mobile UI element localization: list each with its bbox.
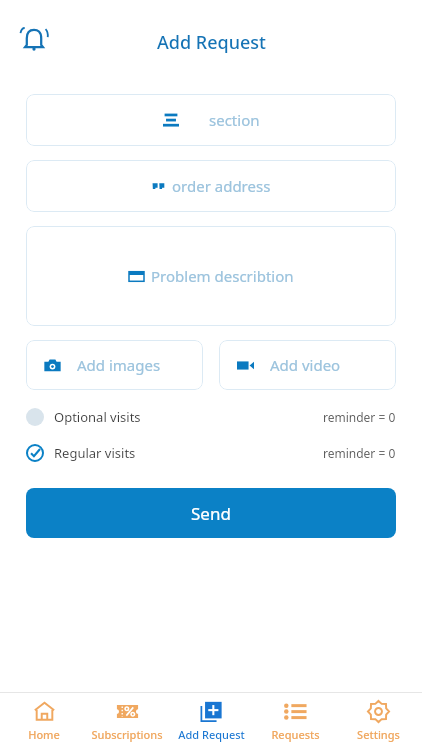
- button[interactable]: order address: [26, 160, 396, 212]
- button[interactable]: Add Request: [171, 692, 251, 750]
- button[interactable]: Add images: [26, 340, 203, 390]
- button[interactable]: section: [26, 94, 396, 146]
- staticText: Add video: [270, 355, 341, 375]
- button[interactable]: Settings: [338, 692, 418, 750]
- staticText: order address: [172, 176, 271, 196]
- button[interactable]: Optional visits: [26, 404, 396, 430]
- button[interactable]: Notifications: [10, 16, 58, 64]
- button[interactable]: Problem describtion: [26, 226, 396, 326]
- button[interactable]: Send: [26, 488, 396, 538]
- staticText: Requests: [271, 727, 320, 742]
- staticText: reminder = 0: [323, 409, 396, 425]
- button[interactable]: Subscriptions: [87, 692, 167, 750]
- button[interactable]: Requests: [255, 692, 335, 750]
- button[interactable]: Home: [4, 692, 84, 750]
- staticText: Add Request: [157, 30, 266, 55]
- staticText: Send: [191, 502, 231, 525]
- staticText: reminder = 0: [323, 445, 396, 461]
- button[interactable]: Add video: [219, 340, 396, 390]
- staticText: Optional visits: [54, 408, 141, 426]
- staticText: Home: [28, 727, 60, 742]
- button[interactable]: Regular visits: [26, 440, 396, 466]
- staticText: Add Request: [178, 727, 245, 742]
- staticText: Settings: [357, 727, 400, 742]
- staticText: Problem describtion: [151, 266, 294, 286]
- staticText: Regular visits: [54, 444, 136, 462]
- staticText: Subscriptions: [91, 727, 163, 742]
- staticText: Add images: [77, 355, 161, 375]
- staticText: section: [209, 110, 260, 130]
